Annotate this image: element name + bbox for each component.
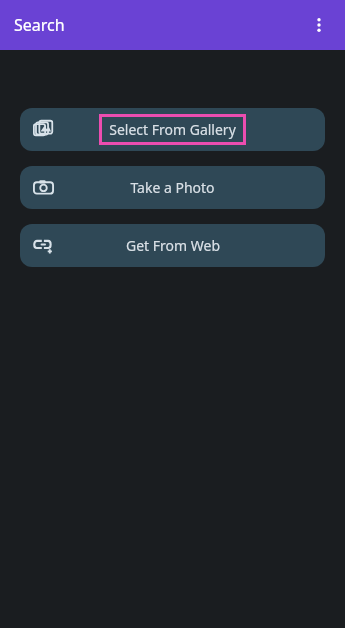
button[interactable]: Get From Web <box>20 224 325 267</box>
staticText: Search <box>14 14 65 36</box>
button[interactable]: Take a Photo <box>20 166 325 209</box>
staticText: Select From Gallery <box>109 120 236 139</box>
button[interactable]: Select From Gallery <box>20 108 325 151</box>
button[interactable]: More options <box>301 7 337 43</box>
staticText: Get From Web <box>126 236 220 255</box>
staticText: Take a Photo <box>130 178 215 197</box>
